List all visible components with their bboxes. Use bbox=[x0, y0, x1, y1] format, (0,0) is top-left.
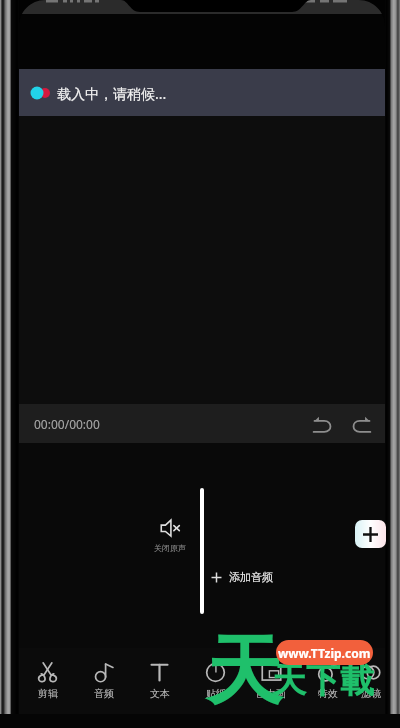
button[interactable]: 载入中，请稍候... bbox=[19, 69, 385, 116]
button[interactable]: 滤镜 bbox=[355, 648, 385, 714]
button[interactable]: 音频 bbox=[75, 648, 131, 714]
button[interactable]: Add clip bbox=[355, 520, 386, 548]
button[interactable]: 关闭原声 bbox=[154, 518, 186, 553]
button[interactable]: 特效 bbox=[299, 648, 355, 714]
button[interactable]: 剪辑 bbox=[19, 648, 75, 714]
staticText: 剪辑 bbox=[38, 687, 58, 700]
button[interactable]: 添加音频 bbox=[211, 570, 273, 584]
button[interactable]: 画中画 bbox=[243, 648, 299, 714]
staticText: www.TTzip.com bbox=[278, 645, 371, 661]
staticText: 00:00/00:00 bbox=[34, 416, 100, 432]
button[interactable]: 贴纸 bbox=[187, 648, 243, 714]
staticText: 天 bbox=[206, 624, 282, 720]
staticText: 文本 bbox=[150, 687, 170, 700]
staticText: 滤镜 bbox=[361, 687, 381, 700]
staticText: 天下載 bbox=[272, 659, 374, 702]
staticText: 特效 bbox=[318, 687, 338, 700]
button[interactable]: Redo bbox=[345, 407, 379, 441]
staticText: 贴纸 bbox=[206, 687, 226, 700]
staticText: 画中画 bbox=[256, 687, 286, 700]
staticText: 添加音频 bbox=[229, 570, 273, 584]
staticText: 音频 bbox=[94, 687, 114, 700]
button[interactable]: 文本 bbox=[131, 648, 187, 714]
staticText: 关闭原声 bbox=[154, 543, 186, 553]
staticText: 载入中，请稍候... bbox=[57, 84, 167, 103]
button[interactable]: Undo bbox=[305, 407, 339, 441]
